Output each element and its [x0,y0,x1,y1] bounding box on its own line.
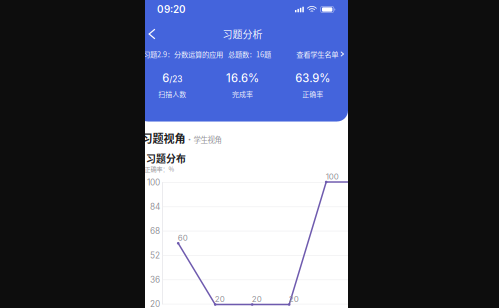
staticText: % [248,71,259,85]
staticText: 63.9 [295,71,319,85]
staticText: 总题数：16题 [228,49,271,59]
staticText: 扫描人数 [158,89,186,99]
staticText: 查看学生名单 [296,49,338,59]
staticText: 20 [252,294,262,304]
staticText: 6 [162,71,169,85]
staticText: 习题2.9：分数运算的应用 [143,49,223,59]
staticText: 36 [150,275,160,285]
staticText: 52 [150,250,160,260]
button[interactable]: 查看学生名单 [296,49,345,59]
staticText: 习题分布 [146,151,186,165]
staticText: 正确率 [302,89,323,99]
staticText: 20 [289,294,299,304]
staticText: 100 [147,177,160,187]
staticText: 正确率：% [144,164,174,173]
staticText: 09:20 [157,3,186,15]
staticText: 习题分析 [222,27,262,41]
staticText: 84 [150,202,160,212]
staticText: · [185,134,193,145]
staticText: 学生视角 [193,134,221,145]
staticText: 68 [150,226,160,236]
staticText: 60 [178,233,188,243]
button[interactable]: 返回 [141,24,163,44]
staticText: 完成率 [232,89,253,99]
staticText: 习题视角 [141,130,185,146]
staticText: % [319,71,330,85]
staticText: /23 [169,74,182,84]
staticText: 16.6 [226,71,248,85]
staticText: 20 [215,294,225,304]
staticText: 100 [326,172,339,181]
staticText: 20 [150,299,160,308]
